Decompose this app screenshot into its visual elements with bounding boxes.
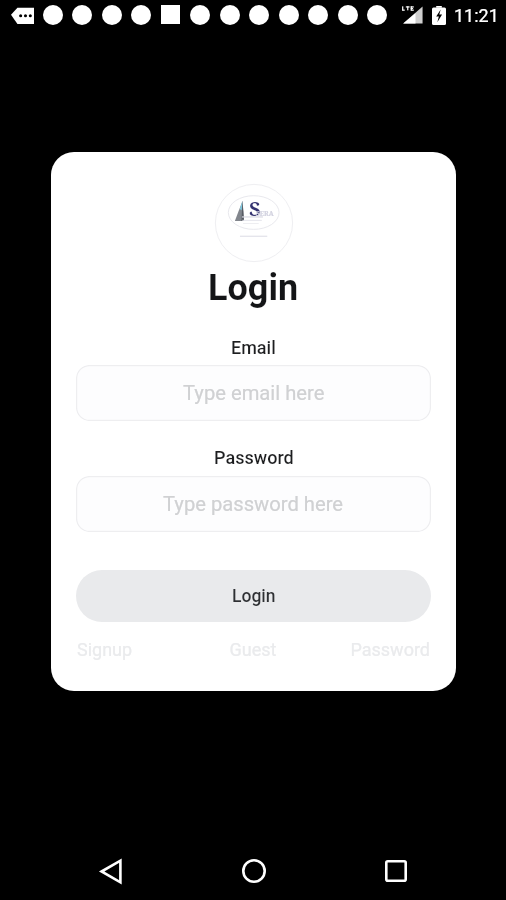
staticText: Login [232, 586, 276, 607]
button[interactable]: Password [312, 639, 430, 660]
button[interactable]: Home [230, 847, 278, 895]
button[interactable]: Login [76, 570, 431, 622]
button[interactable]: Type password here [76, 476, 431, 532]
staticText: Password [312, 639, 430, 660]
staticText: SERA [256, 209, 274, 218]
staticText: Type email here [183, 381, 325, 405]
staticText: S [249, 195, 261, 222]
staticText: Password [214, 447, 294, 468]
button[interactable]: Recent apps [372, 847, 420, 895]
staticText: Type password here [163, 492, 344, 516]
staticText: Guest [194, 639, 312, 660]
staticText: Signup [77, 639, 194, 660]
button[interactable]: Signup [77, 639, 194, 660]
button[interactable]: Back [87, 847, 135, 895]
button[interactable]: Guest [194, 639, 312, 660]
staticText: Login [208, 267, 299, 309]
staticText: 11:21 [454, 5, 499, 26]
staticText: Email [231, 337, 276, 358]
button[interactable]: Type email here [76, 365, 431, 421]
